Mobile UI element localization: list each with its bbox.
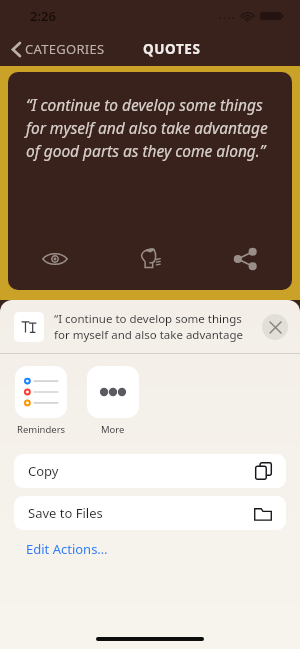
staticText: 2:26 <box>30 7 56 25</box>
button[interactable]: Save to Files <box>14 496 286 530</box>
button[interactable]: Share <box>223 237 267 281</box>
button[interactable]: Edit Actions… <box>26 540 108 558</box>
staticText: QUOTES <box>143 40 201 58</box>
staticText: Save to Files <box>28 504 254 522</box>
button[interactable]: View <box>33 237 77 281</box>
button[interactable]: Speak <box>128 237 172 281</box>
staticText: More <box>101 423 125 436</box>
button[interactable]: Close <box>262 314 288 340</box>
staticText: “I continue to develop some things for m… <box>26 94 274 162</box>
button[interactable]: Reminders <box>14 366 68 436</box>
button[interactable]: CATEGORIES <box>8 36 109 62</box>
staticText: Reminders <box>17 423 66 436</box>
staticText: CATEGORIES <box>25 40 105 58</box>
staticText: Copy <box>28 462 255 480</box>
button[interactable]: Copy <box>14 454 286 488</box>
staticText: “I continue to develop some things for m… <box>54 311 254 342</box>
button[interactable]: More <box>86 366 140 436</box>
